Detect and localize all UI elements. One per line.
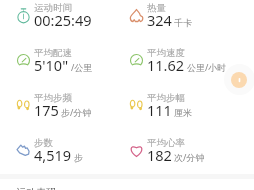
staticText: 热量 (147, 2, 166, 14)
button[interactable]: 平均速度 (127, 40, 254, 85)
button[interactable]: Scroll to top (231, 72, 247, 88)
staticText: 平均速度 (147, 47, 185, 59)
button[interactable]: 热量 (127, 0, 254, 40)
button[interactable]: 步数 (0, 130, 127, 175)
button[interactable]: 平均配速 (0, 40, 127, 85)
staticText: 175 (34, 100, 59, 120)
staticText: 步 (74, 152, 83, 163)
button[interactable]: 平均步频 (0, 85, 127, 130)
staticText: 平均配速 (34, 47, 72, 59)
staticText: /公里 (71, 61, 93, 73)
staticText: 步/分钟 (61, 106, 92, 118)
button[interactable]: 运动时间 (0, 0, 127, 40)
button[interactable]: 平均步幅 (127, 85, 254, 130)
staticText: 5'10" (34, 55, 69, 75)
staticText: 步数 (34, 137, 53, 149)
staticText: 次/分钟 (174, 151, 205, 163)
staticText: 运动表现 ⌄ (16, 185, 67, 190)
staticText: 平均心率 (147, 137, 185, 149)
staticText: 千卡 (174, 17, 192, 28)
staticText: 111 (147, 100, 172, 120)
staticText: 11.62 (147, 55, 185, 75)
staticText: 00:25:49 (34, 10, 92, 30)
staticText: 324 (147, 10, 172, 30)
staticText: 4,519 (34, 145, 72, 165)
staticText: 平均步幅 (147, 92, 185, 104)
staticText: 厘米 (174, 107, 192, 118)
staticText: 公里/小时 (187, 61, 227, 73)
button[interactable]: 平均心率 (127, 130, 254, 175)
staticText: 运动时间 (34, 2, 72, 14)
staticText: 182 (147, 145, 172, 165)
staticText: 平均步频 (34, 92, 72, 104)
